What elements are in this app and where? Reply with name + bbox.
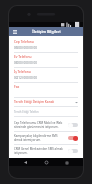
button[interactable]: Fax xyxy=(9,83,83,98)
staticText: 0(000) 000 00 00 xyxy=(14,61,38,65)
button[interactable]: Recents xyxy=(63,159,70,166)
button[interactable]: Menu xyxy=(11,28,18,35)
button[interactable]: Ev Telefonu xyxy=(9,53,83,68)
button[interactable]: Cep Telefonumu CRM Mobil ve Web sitesind… xyxy=(9,119,83,131)
staticText: CRM Genel Merkezinden SMS almak istiyoru… xyxy=(14,147,65,155)
staticText: Fax xyxy=(14,85,20,89)
button[interactable]: Cep Telefonu xyxy=(9,38,83,53)
button[interactable]: Back xyxy=(22,159,29,166)
staticText: İletişim Bilgileri xyxy=(32,29,61,34)
button[interactable]: Kampanyalar, bilgilendirme SMS almak ist… xyxy=(9,132,83,144)
button[interactable]: İş Telefonu xyxy=(9,68,83,83)
staticText: 0(500) 000 00 00 xyxy=(14,46,38,50)
staticText: Cep Telefonumu CRM Mobil ve Web sitesind… xyxy=(14,121,65,129)
staticText: Kampanyalar, bilgilendirme SMS almak ist… xyxy=(14,134,65,142)
staticText: Cep Telefonu xyxy=(14,40,34,44)
button[interactable]: CRM Genel Merkezinden SMS almak istiyoru… xyxy=(9,145,83,157)
staticText: Ev Telefonu xyxy=(14,55,32,59)
button[interactable]: Tercih Ettiği İletişim Kanalı xyxy=(9,100,83,117)
staticText: 0(212) 000 00 00 xyxy=(14,76,38,80)
button[interactable]: Home xyxy=(43,159,50,166)
staticText: İş Telefonu xyxy=(14,70,31,74)
staticText: Tercih Ettiği İletişim Kanalı xyxy=(14,100,75,104)
staticText: Tercih Ettiği Telefon xyxy=(14,110,39,114)
